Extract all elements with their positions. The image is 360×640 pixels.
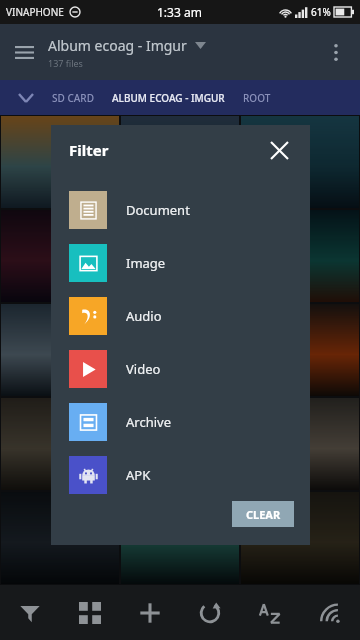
button[interactable]: Audio — [51, 289, 310, 342]
button[interactable] — [121, 492, 239, 584]
button[interactable] — [241, 398, 359, 490]
staticText: Video — [126, 360, 161, 378]
button[interactable]: Image — [51, 236, 310, 289]
button[interactable]: ROOT — [243, 80, 271, 115]
button[interactable] — [241, 304, 359, 396]
button[interactable] — [1, 398, 119, 490]
button[interactable]: ALBUM ECOAG - IMGUR — [112, 80, 225, 115]
button[interactable]: APK — [51, 448, 310, 501]
button[interactable]: Expand — [0, 80, 52, 115]
button[interactable]: Video — [51, 342, 310, 395]
button[interactable]: Menu — [0, 28, 48, 76]
staticText: APK — [126, 466, 151, 484]
staticText: 1:33 am — [157, 4, 202, 20]
staticText: Album ecoag - Imgur — [48, 36, 187, 55]
button[interactable] — [121, 116, 239, 208]
button[interactable]: Album ecoag - Imgur — [48, 36, 312, 69]
staticText: ALBUM ECOAG - IMGUR — [112, 91, 225, 105]
button[interactable] — [121, 210, 239, 302]
button[interactable] — [1, 210, 119, 302]
staticText: Archive — [126, 413, 171, 431]
button[interactable]: More options — [312, 28, 360, 76]
button[interactable]: Sort — [240, 585, 300, 640]
button[interactable]: Filter — [0, 585, 60, 640]
staticText: 61% — [311, 5, 331, 19]
button[interactable] — [241, 492, 359, 584]
button[interactable]: Add — [120, 585, 180, 640]
staticText: ROOT — [243, 91, 271, 105]
button[interactable] — [1, 116, 119, 208]
button[interactable] — [241, 210, 359, 302]
button[interactable] — [1, 492, 119, 584]
button[interactable]: Grid view — [60, 585, 120, 640]
staticText: Image — [126, 254, 166, 272]
staticText: Document — [126, 201, 190, 219]
button[interactable]: Archive — [51, 395, 310, 448]
button[interactable]: SD CARD — [52, 80, 94, 115]
button[interactable]: Network — [300, 585, 360, 640]
button[interactable] — [121, 398, 239, 490]
button[interactable] — [1, 304, 119, 396]
button[interactable]: Close — [262, 133, 296, 167]
button[interactable]: Document — [51, 183, 310, 236]
button[interactable]: CLEAR — [232, 501, 294, 527]
button[interactable]: Refresh — [180, 585, 240, 640]
staticText: 137 files — [48, 57, 83, 69]
button[interactable] — [241, 116, 359, 208]
staticText: Audio — [126, 307, 162, 325]
button[interactable] — [121, 304, 239, 396]
staticText: Filter — [69, 140, 109, 160]
staticText: CLEAR — [246, 507, 281, 522]
staticText: VINAPHONE — [6, 5, 64, 19]
staticText: SD CARD — [52, 91, 94, 105]
